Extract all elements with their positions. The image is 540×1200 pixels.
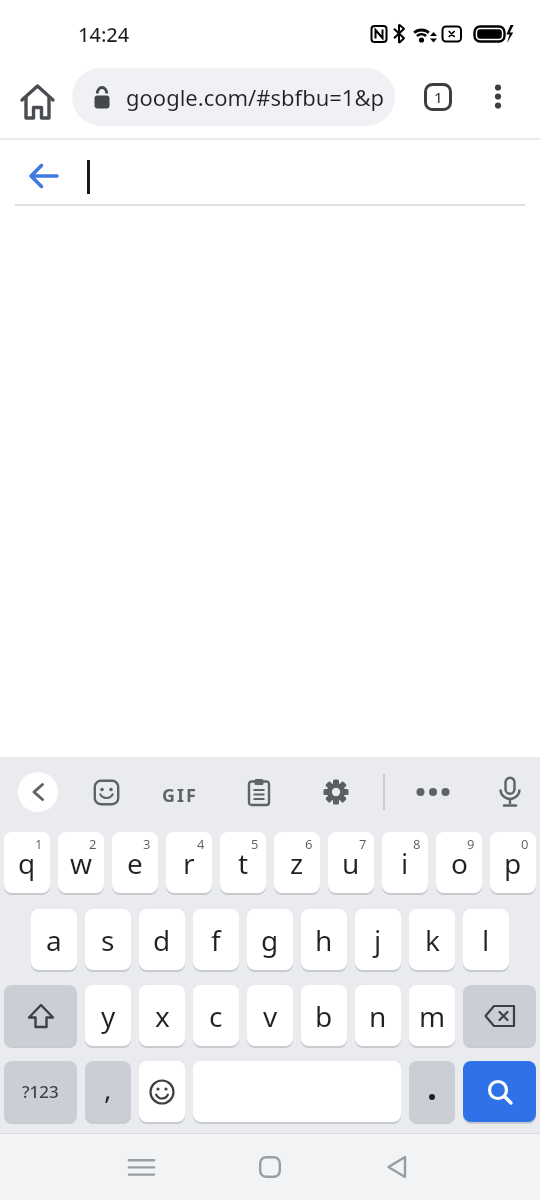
staticText: b	[315, 997, 333, 1035]
staticText: u	[342, 844, 360, 882]
button[interactable]	[498, 777, 522, 809]
button[interactable]: g	[247, 909, 293, 970]
button[interactable]: x	[139, 985, 185, 1046]
staticText: GIF	[162, 783, 198, 808]
button[interactable]: c	[193, 985, 239, 1046]
button[interactable]: w	[58, 832, 104, 893]
button[interactable]	[139, 1061, 185, 1122]
staticText: j	[374, 921, 382, 959]
staticText: 9	[467, 835, 475, 853]
button[interactable]	[480, 78, 516, 116]
staticText: w	[70, 844, 93, 882]
button[interactable]: f	[193, 909, 239, 970]
button[interactable]: r	[166, 832, 212, 893]
button[interactable]: m	[409, 985, 455, 1046]
button[interactable]	[409, 1061, 455, 1122]
button[interactable]: v	[247, 985, 293, 1046]
staticText: 6	[305, 835, 313, 853]
button[interactable]: j	[355, 909, 401, 970]
staticText: i	[401, 844, 409, 882]
staticText: 14:24	[78, 21, 130, 48]
button[interactable]	[412, 775, 454, 809]
staticText: ?123	[22, 1080, 59, 1103]
staticText: d	[153, 921, 171, 959]
staticText: p	[504, 844, 522, 882]
staticText: 0	[521, 835, 529, 853]
button[interactable]	[19, 82, 56, 122]
button[interactable]	[94, 780, 119, 805]
staticText: y	[101, 997, 116, 1035]
button[interactable]: u	[328, 832, 374, 893]
button[interactable]: b	[301, 985, 347, 1046]
staticText: n	[369, 997, 387, 1035]
staticText: h	[315, 921, 333, 959]
staticText: o	[451, 844, 468, 882]
button[interactable]	[115, 1141, 167, 1193]
staticText: v	[263, 997, 278, 1035]
button[interactable]: h	[301, 909, 347, 970]
staticText: l	[482, 921, 490, 959]
staticText: k	[425, 921, 440, 959]
staticText: 8	[413, 835, 421, 853]
staticText: q	[18, 844, 36, 882]
button[interactable]: k	[409, 909, 455, 970]
button[interactable]: y	[85, 985, 131, 1046]
staticText: r	[183, 844, 195, 882]
button[interactable]: n	[355, 985, 401, 1046]
staticText: google.com/#sbfbu=1&p	[126, 82, 385, 112]
staticText: 2	[89, 835, 97, 853]
button[interactable]	[371, 1141, 423, 1193]
staticText: 1	[434, 87, 443, 107]
staticText: z	[290, 844, 304, 882]
button[interactable]	[248, 779, 270, 806]
button[interactable]	[4, 985, 77, 1046]
staticText: a	[46, 921, 62, 959]
staticText: 4	[197, 835, 205, 853]
button[interactable]: q	[4, 832, 50, 893]
staticText: 3	[143, 835, 151, 853]
button[interactable]: o	[436, 832, 482, 893]
button[interactable]	[26, 159, 60, 193]
button[interactable]	[323, 779, 349, 805]
button[interactable]: s	[85, 909, 131, 970]
button[interactable]	[463, 1061, 536, 1122]
button[interactable]: e	[112, 832, 158, 893]
staticText: e	[127, 844, 143, 882]
button[interactable]: d	[139, 909, 185, 970]
staticText: x	[155, 997, 170, 1035]
button[interactable]: l	[463, 909, 509, 970]
staticText: 1	[35, 835, 43, 853]
button[interactable]: google.com/#sbfbu=1&p	[72, 68, 395, 126]
staticText: m	[419, 997, 446, 1035]
button[interactable]: ?123	[4, 1061, 77, 1122]
button[interactable]: z	[274, 832, 320, 893]
button[interactable]: 1	[424, 83, 452, 111]
staticText: c	[209, 997, 223, 1035]
staticText: 7	[359, 835, 367, 853]
button[interactable]: ,	[85, 1061, 131, 1122]
staticText: 5	[251, 835, 259, 853]
button[interactable]: p	[490, 832, 536, 893]
staticText: ,	[104, 1069, 112, 1107]
button[interactable]	[463, 985, 536, 1046]
button[interactable]: a	[31, 909, 77, 970]
button[interactable]	[18, 772, 58, 812]
staticText: s	[101, 921, 115, 959]
button[interactable]: t	[220, 832, 266, 893]
button[interactable]: i	[382, 832, 428, 893]
button[interactable]	[244, 1141, 296, 1193]
staticText: t	[238, 844, 249, 882]
staticText: g	[261, 921, 279, 959]
staticText: f	[211, 921, 221, 959]
